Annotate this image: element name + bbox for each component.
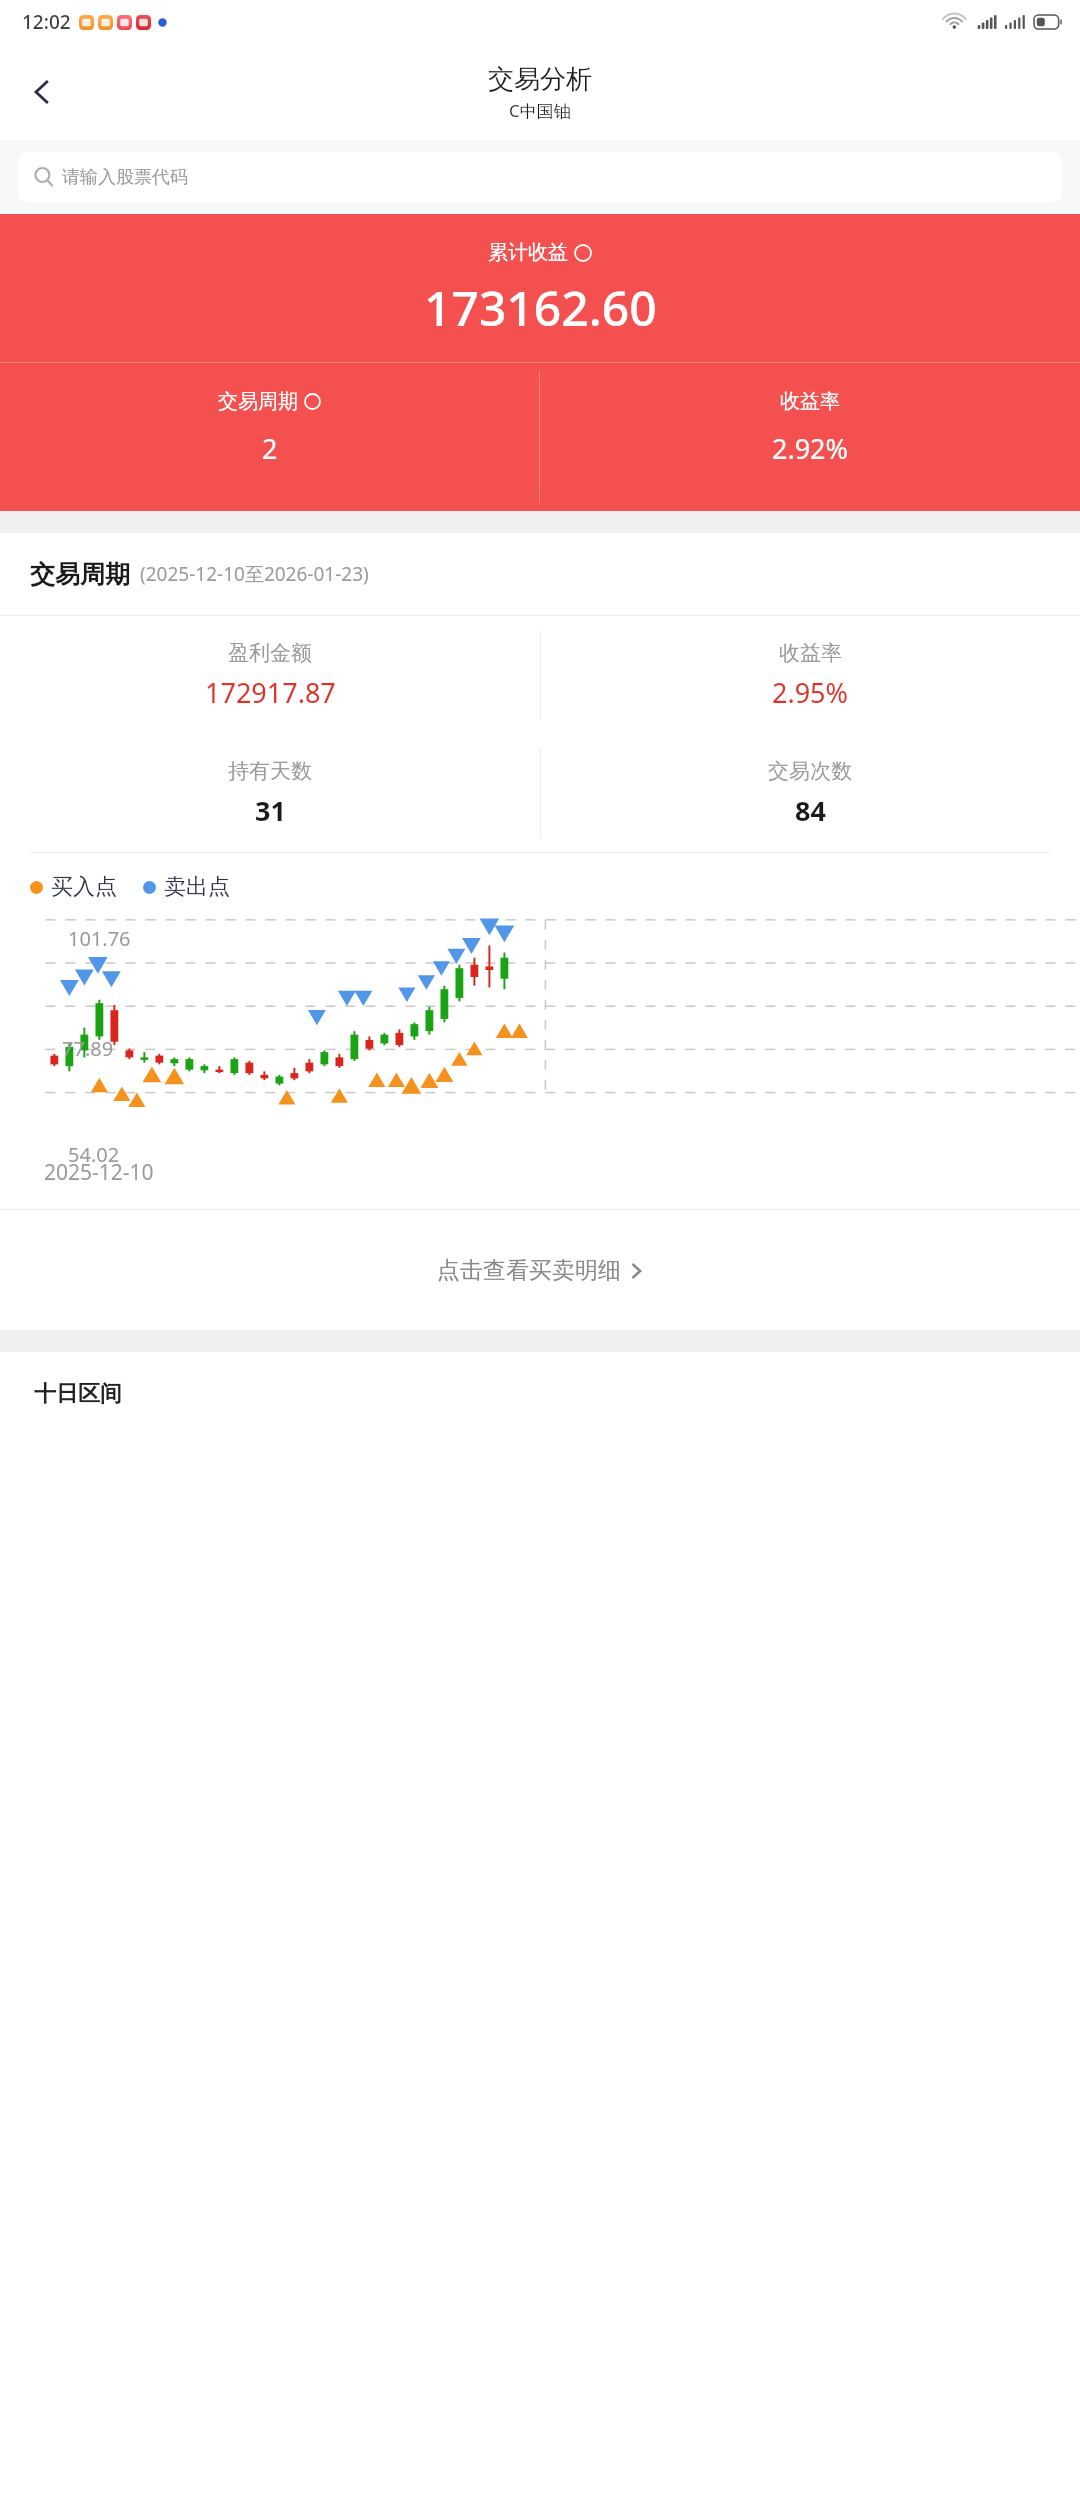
staticText: 173162.60 xyxy=(424,275,657,340)
button[interactable]: 点击查看买卖明细 xyxy=(0,1210,1080,1330)
staticText: 12:02 xyxy=(22,9,71,35)
staticText: 交易次数 xyxy=(768,758,852,784)
staticText: 84 xyxy=(795,792,826,829)
staticText: 2025-12-10 xyxy=(44,1158,154,1187)
other: 帮助 xyxy=(304,393,321,410)
staticText: 交易周期 xyxy=(218,389,298,414)
staticText: 交易周期 xyxy=(30,559,130,590)
staticText: 172917.87 xyxy=(205,674,336,711)
staticText: 持有天数 xyxy=(228,758,312,784)
button[interactable]: Back xyxy=(14,63,72,121)
staticText: 收益率 xyxy=(779,640,842,666)
staticText: 点击查看买卖明细 xyxy=(437,1256,621,1285)
button[interactable]: 请输入股票代码 xyxy=(18,152,1062,202)
staticText: 2.95% xyxy=(772,674,849,711)
staticText: 交易分析 xyxy=(488,63,592,96)
button[interactable]: 收益率 xyxy=(540,363,1080,511)
staticText: 请输入股票代码 xyxy=(62,166,188,189)
staticText: 2.92% xyxy=(772,430,849,467)
staticText: 77.89 xyxy=(62,1035,114,1062)
button[interactable]: 累计收益 xyxy=(488,240,592,265)
staticText: 卖出点 xyxy=(164,873,230,901)
button[interactable]: 交易周期 xyxy=(0,363,539,511)
staticText: 54.02 xyxy=(68,1141,120,1168)
staticText: C中国铀 xyxy=(509,99,571,122)
staticText: 101.76 xyxy=(68,925,131,952)
other: 帮助 xyxy=(574,244,592,262)
staticText: 收益率 xyxy=(780,389,840,414)
staticText: 2 xyxy=(262,430,278,467)
staticText: 盈利金额 xyxy=(228,640,312,666)
staticText: 十日区间 xyxy=(34,1380,122,1408)
staticText: 31 xyxy=(255,792,286,829)
staticText: 买入点 xyxy=(51,873,117,901)
staticText: 累计收益 xyxy=(488,240,568,265)
staticText: (2025-12-10至2026-01-23) xyxy=(140,561,369,587)
